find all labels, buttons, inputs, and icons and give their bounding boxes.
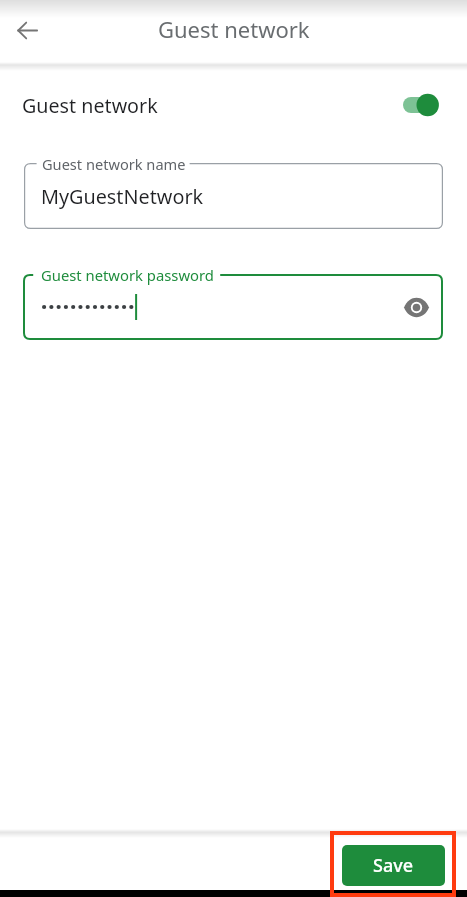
button[interactable]: Save <box>342 845 445 886</box>
staticText: Save <box>373 853 414 878</box>
button[interactable]: Guest network <box>0 67 467 143</box>
button[interactable]: Back <box>6 9 48 51</box>
button[interactable]: Show password <box>397 288 435 326</box>
staticText: MyGuestNetwork <box>41 183 204 210</box>
staticText: Guest network name <box>42 154 186 174</box>
staticText: Guest network <box>158 14 310 44</box>
staticText: Guest network <box>22 92 158 119</box>
staticText: Guest network password <box>41 265 214 285</box>
button[interactable] <box>399 85 443 125</box>
